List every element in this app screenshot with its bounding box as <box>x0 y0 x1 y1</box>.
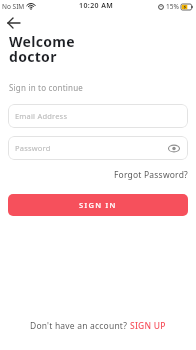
button[interactable] <box>7 16 21 30</box>
staticText: Password <box>15 143 51 153</box>
staticText: SIGN UP <box>130 320 166 332</box>
button[interactable]: SIGN IN <box>8 194 188 216</box>
staticText: 10:20 AM <box>79 1 114 11</box>
button[interactable]: Email Address <box>8 104 188 128</box>
staticText: Don't have an account? <box>30 320 130 332</box>
staticText: Sign in to continue <box>9 82 84 93</box>
staticText: Welcome doctor <box>9 32 75 66</box>
staticText: SIGN IN <box>79 200 117 210</box>
button[interactable]: Forgot Password? <box>114 169 188 181</box>
staticText: 15% <box>166 2 179 11</box>
button[interactable]: Password <box>8 136 188 160</box>
staticText: Email Address <box>15 111 68 121</box>
staticText: No SIM <box>2 2 25 11</box>
button[interactable]: Don't have an account? <box>0 320 196 332</box>
